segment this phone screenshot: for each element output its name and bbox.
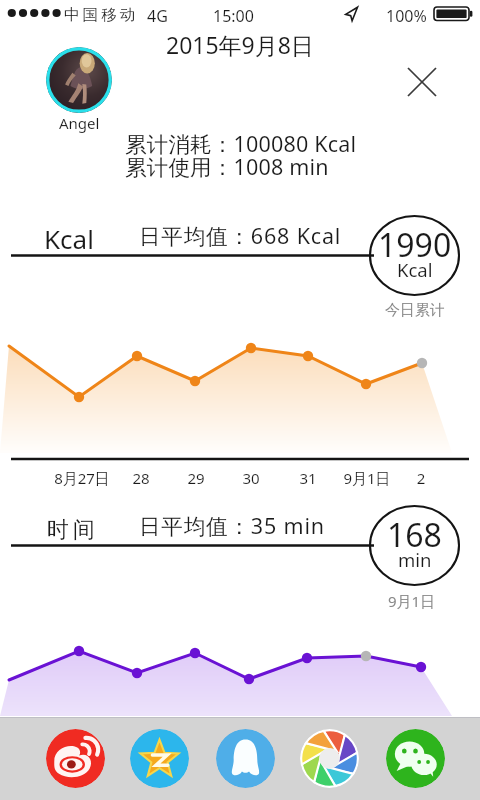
staticText: 9月1日 (388, 591, 436, 611)
staticText: Angel (59, 113, 100, 133)
staticText: 累计使用：1008 min (125, 152, 329, 181)
staticText: 1990 (378, 223, 452, 267)
staticText: 31 (268, 468, 348, 488)
staticText: 2015年9月8日 (166, 29, 314, 60)
staticText: 15:00 (213, 5, 254, 27)
button[interactable]: Weibo (46, 729, 105, 788)
staticText: 2 (381, 468, 461, 488)
button[interactable]: WeChat (386, 729, 445, 788)
staticText: 时间 (45, 516, 97, 544)
staticText: 中国移动 (64, 5, 139, 25)
staticText: min (398, 547, 432, 572)
staticText: Kcal (397, 257, 433, 282)
staticText: 8月27日 (42, 468, 122, 488)
button[interactable] (46, 47, 112, 113)
staticText: 今日累计 (385, 301, 445, 320)
staticText: 28 (101, 468, 181, 488)
staticText: 168 (387, 513, 442, 557)
button[interactable]: QZone (130, 729, 189, 788)
button[interactable]: Close (400, 60, 444, 104)
staticText: 累计消耗：100080 Kcal (125, 129, 357, 158)
staticText: 29 (156, 468, 236, 488)
staticText: Kcal (44, 221, 94, 256)
staticText: 9月1日 (327, 468, 407, 488)
staticText: 30 (211, 468, 291, 488)
staticText: 日平均值：668 Kcal (139, 221, 342, 250)
staticText: 100% (386, 5, 427, 27)
staticText: 4G (147, 5, 168, 27)
staticText: 日平均值：35 min (139, 511, 325, 540)
button[interactable]: QQ (216, 729, 275, 788)
button[interactable]: Photos (300, 729, 359, 788)
